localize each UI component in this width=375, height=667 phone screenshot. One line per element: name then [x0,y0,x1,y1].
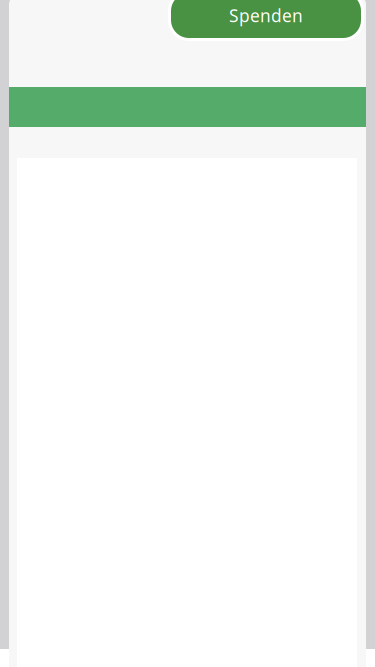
staticText: Spenden [229,4,303,27]
button[interactable]: Spenden [168,0,364,41]
